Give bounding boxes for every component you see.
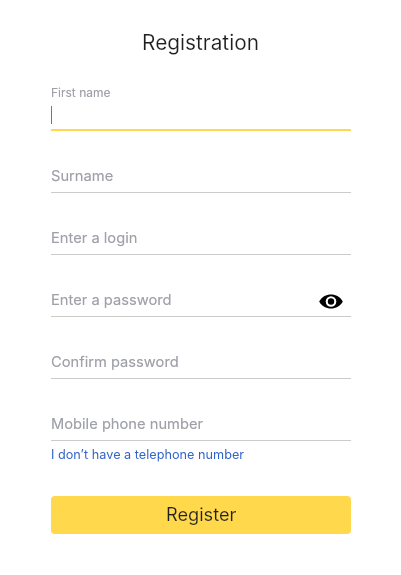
staticText: Enter a login — [51, 229, 138, 247]
staticText: Mobile phone number — [51, 415, 204, 433]
button[interactable]: Show password — [316, 286, 346, 316]
staticText: I don’t have a telephone number — [51, 447, 245, 462]
staticText: First name — [51, 85, 111, 100]
button[interactable]: Surname — [51, 131, 351, 193]
button[interactable]: Mobile phone number — [51, 379, 351, 441]
button[interactable]: Register — [51, 496, 351, 534]
button[interactable]: Confirm password — [51, 317, 351, 379]
staticText: Surname — [51, 167, 114, 185]
staticText: Register — [166, 503, 237, 525]
button[interactable]: First name — [51, 69, 351, 131]
staticText: Confirm password — [51, 353, 179, 371]
staticText: Registration — [0, 30, 401, 55]
staticText: Enter a password — [51, 291, 172, 309]
button[interactable]: I don’t have a telephone number — [51, 447, 245, 462]
button[interactable]: Enter a password — [51, 255, 351, 317]
button[interactable]: Enter a login — [51, 193, 351, 255]
